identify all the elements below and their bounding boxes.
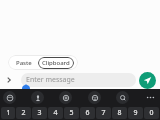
staticText: Enter message: [26, 75, 75, 85]
button[interactable]: Settings: [59, 91, 72, 104]
staticText: 5: [69, 108, 74, 118]
button[interactable]: 0: [144, 107, 159, 119]
staticText: 1: [6, 108, 11, 118]
staticText: 0: [149, 108, 154, 118]
button[interactable]: 1: [1, 107, 15, 119]
button[interactable]: Enter message: [21, 73, 136, 87]
button[interactable]: Clipboard: [38, 57, 74, 69]
button[interactable]: 9: [128, 107, 143, 119]
staticText: 4: [53, 108, 58, 118]
button[interactable]: 7: [96, 107, 111, 119]
button[interactable]: Stickers: [3, 91, 16, 104]
staticText: 6: [85, 108, 90, 118]
button[interactable]: 2: [16, 107, 31, 119]
staticText: 7: [101, 108, 106, 118]
button[interactable]: 8: [112, 107, 127, 119]
staticText: 8: [117, 108, 122, 118]
button[interactable]: 4: [48, 107, 63, 119]
staticText: Clipboard: [42, 59, 70, 67]
button[interactable]: Search: [116, 91, 129, 104]
staticText: 3: [37, 108, 42, 118]
button[interactable]: Emoji: [88, 91, 101, 104]
button[interactable]: More options: [144, 91, 157, 104]
staticText: 2: [21, 108, 26, 118]
button[interactable]: Paste: [12, 57, 36, 69]
staticText: 9: [133, 108, 138, 118]
button[interactable]: 3: [32, 107, 47, 119]
button[interactable]: 5: [64, 107, 79, 119]
button[interactable]: Show more options: [0, 71, 18, 89]
staticText: Paste: [16, 59, 32, 67]
button[interactable]: Voice input: [31, 91, 44, 104]
button[interactable]: Send: [139, 72, 156, 89]
button[interactable]: 6: [80, 107, 95, 119]
